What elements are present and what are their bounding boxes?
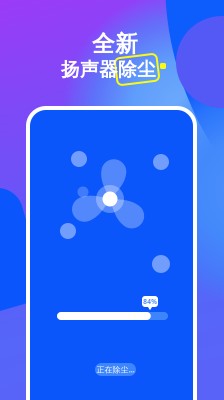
staticText: 84% <box>143 297 157 306</box>
staticText: 全新 <box>92 30 138 58</box>
staticText: 正在除尘... <box>96 364 134 375</box>
staticText: 扬声器除尘 <box>61 58 156 81</box>
button[interactable]: 正在除尘... <box>95 363 136 376</box>
